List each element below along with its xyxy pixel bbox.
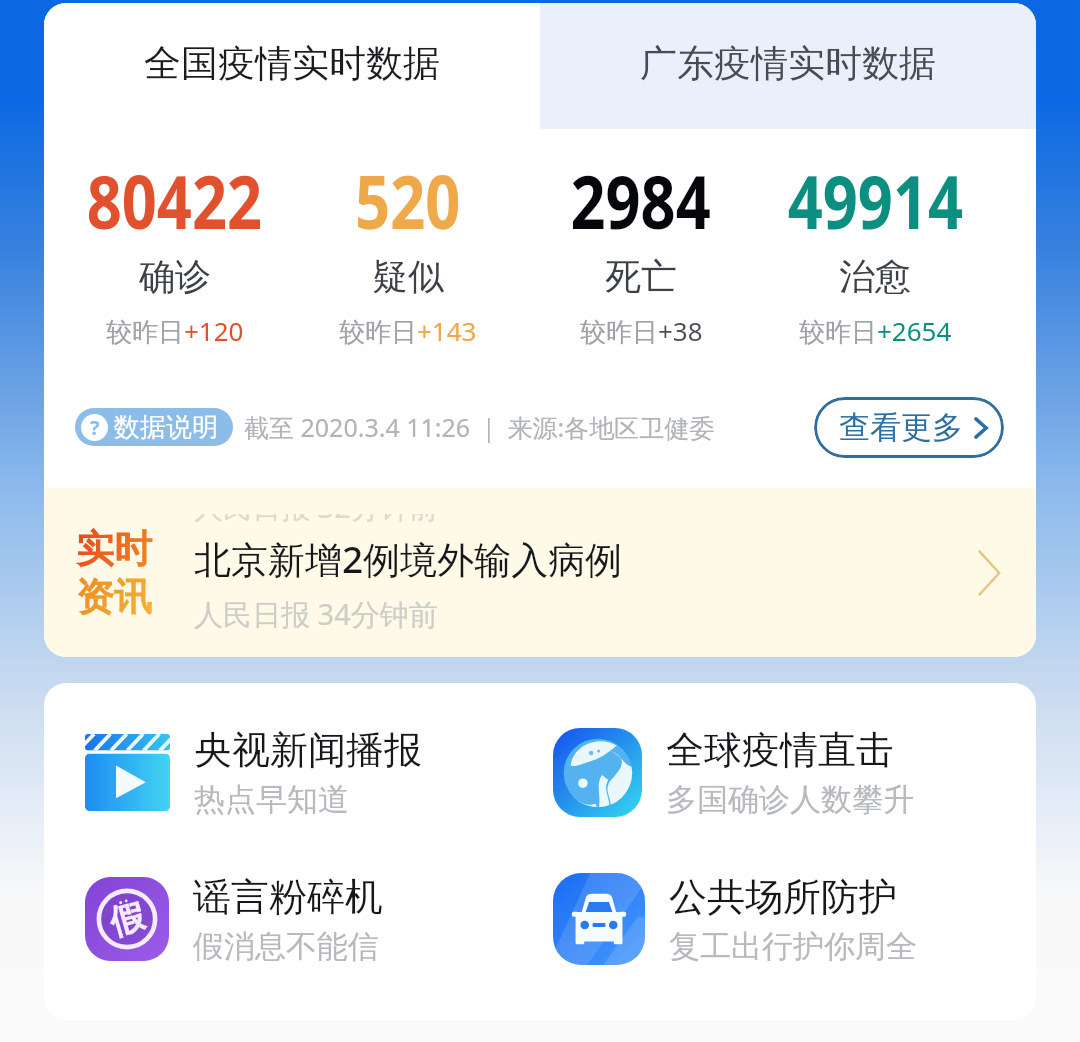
staticText: 假消息不能信 bbox=[193, 927, 379, 966]
staticText: 520 bbox=[355, 151, 461, 250]
staticText: 80422 bbox=[87, 151, 262, 250]
staticText: 谣言粉碎机 bbox=[193, 873, 383, 921]
staticText: 截至 2020.3.4 11:26 ｜ 来源:各地区卫健委 bbox=[244, 410, 715, 444]
staticText: 49914 bbox=[788, 151, 963, 250]
staticText: ? bbox=[90, 414, 100, 441]
staticText: 全国疫情实时数据 bbox=[144, 40, 440, 87]
staticText: 人民日报 34分钟前 bbox=[194, 594, 438, 634]
button[interactable]: 全国疫情实时数据 bbox=[44, 3, 540, 129]
staticText: 多国确诊人数攀升 bbox=[666, 780, 914, 819]
button[interactable]: 央视新闻播报 bbox=[85, 701, 553, 844]
staticText: 北京新增2例境外输入病例 bbox=[194, 533, 623, 584]
staticText: 查看更多 bbox=[839, 408, 963, 447]
button[interactable]: 实时 bbox=[44, 488, 1036, 657]
staticText: 较昨日+2654 bbox=[799, 313, 952, 349]
button[interactable]: 公共场所防护 bbox=[553, 844, 1036, 994]
staticText: 确诊 bbox=[139, 254, 211, 299]
button[interactable]: ? bbox=[75, 408, 233, 446]
button[interactable]: 广东疫情实时数据 bbox=[540, 3, 1036, 129]
other: 更多资讯 bbox=[972, 546, 1006, 600]
staticText: 人民日报 32分钟前 bbox=[194, 488, 438, 527]
staticText: 疑似 bbox=[372, 254, 444, 299]
staticText: 广东疫情实时数据 bbox=[640, 40, 936, 87]
staticText: 较昨日+120 bbox=[106, 313, 244, 349]
staticText: 全球疫情直击 bbox=[666, 726, 894, 774]
staticText: 较昨日+143 bbox=[339, 313, 477, 349]
staticText: 热点早知道 bbox=[194, 780, 349, 819]
button[interactable]: 全球疫情直击 bbox=[553, 701, 1036, 844]
staticText: 复工出行护你周全 bbox=[669, 927, 917, 966]
staticText: 数据说明 bbox=[114, 411, 218, 444]
staticText: 2984 bbox=[570, 151, 711, 250]
staticText: 假 bbox=[105, 894, 149, 945]
button[interactable]: 假 bbox=[85, 844, 553, 994]
staticText: 治愈 bbox=[839, 254, 911, 299]
staticText: 资讯 bbox=[76, 573, 152, 621]
staticText: 实时 bbox=[76, 525, 152, 573]
staticText: 公共场所防护 bbox=[669, 873, 897, 921]
button[interactable]: 查看更多 bbox=[814, 397, 1004, 458]
staticText: 较昨日+38 bbox=[580, 313, 703, 349]
staticText: 死亡 bbox=[605, 254, 677, 299]
staticText: 央视新闻播报 bbox=[194, 726, 422, 774]
